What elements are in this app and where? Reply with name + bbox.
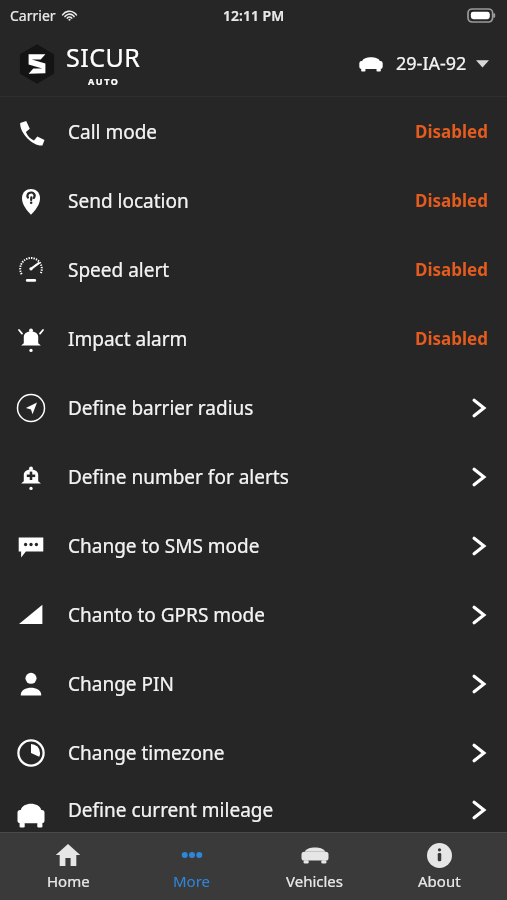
staticText: SICUR <box>66 40 141 74</box>
button[interactable]: 29-IA-92 <box>354 47 493 80</box>
button[interactable]: SICUR <box>16 40 141 87</box>
staticText: Change to SMS mode <box>68 533 472 559</box>
staticText: 12:11 PM <box>223 6 285 25</box>
button[interactable]: Define number for alerts <box>0 442 507 511</box>
staticText: Change PIN <box>68 671 472 697</box>
staticText: Impact alarm <box>68 326 415 352</box>
staticText: About <box>418 871 461 891</box>
button[interactable]: Vehicles <box>260 836 370 897</box>
staticText: AUTO <box>88 75 120 87</box>
button[interactable]: Speed alert <box>0 235 507 304</box>
staticText: Home <box>47 871 90 891</box>
button[interactable]: Call mode <box>0 97 507 166</box>
staticText: Define current mileage <box>68 797 472 823</box>
button[interactable]: Chanto to GPRS mode <box>0 580 507 649</box>
staticText: Speed alert <box>68 257 415 283</box>
staticText: Define number for alerts <box>68 464 472 490</box>
button[interactable]: More <box>137 836 247 897</box>
staticText: Change timezone <box>68 740 472 766</box>
staticText: 29-IA-92 <box>396 51 467 76</box>
staticText: Call mode <box>68 119 415 145</box>
button[interactable]: Send location <box>0 166 507 235</box>
button[interactable]: About <box>384 836 494 897</box>
staticText: More <box>173 871 211 891</box>
staticText: Disabled <box>415 189 488 212</box>
button[interactable]: Change timezone <box>0 718 507 787</box>
button[interactable]: Define current mileage <box>0 787 507 832</box>
button[interactable]: Change PIN <box>0 649 507 718</box>
staticText: Disabled <box>415 258 488 281</box>
staticText: Disabled <box>415 327 488 350</box>
button[interactable]: Define barrier radius <box>0 373 507 442</box>
staticText: Disabled <box>415 120 488 143</box>
button[interactable]: Change to SMS mode <box>0 511 507 580</box>
button[interactable]: Home <box>13 836 123 897</box>
staticText: Chanto to GPRS mode <box>68 602 472 628</box>
staticText: Send location <box>68 188 415 214</box>
staticText: Vehicles <box>286 871 344 891</box>
staticText: Define barrier radius <box>68 395 472 421</box>
staticText: Carrier <box>10 6 56 25</box>
button[interactable]: Impact alarm <box>0 304 507 373</box>
